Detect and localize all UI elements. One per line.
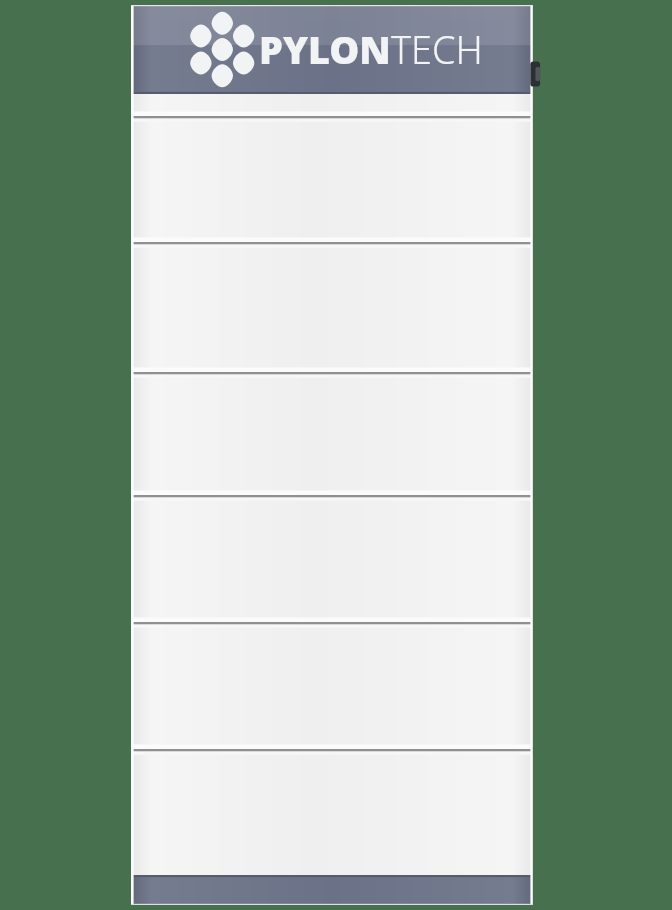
staticText: PYLON xyxy=(259,24,391,75)
staticText: TECH xyxy=(391,24,483,75)
button[interactable]: Pylontech battery stack xyxy=(131,5,533,905)
